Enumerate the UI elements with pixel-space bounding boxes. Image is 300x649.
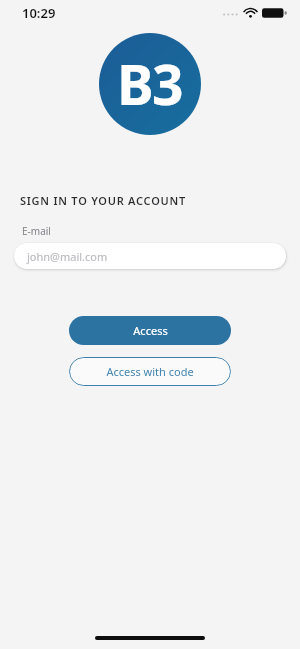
other: Cellular signal bbox=[223, 9, 240, 17]
staticText: john@mail.com bbox=[27, 249, 108, 264]
staticText: E-mail bbox=[22, 224, 51, 238]
button[interactable]: Access bbox=[69, 316, 231, 345]
button[interactable]: john@mail.com bbox=[14, 243, 286, 269]
staticText: 10:29 bbox=[22, 4, 56, 22]
other: Battery bbox=[262, 7, 287, 19]
button[interactable]: Access with code bbox=[69, 357, 231, 386]
staticText: Access bbox=[133, 323, 168, 338]
staticText: Access with code bbox=[106, 364, 194, 379]
other: Wi-Fi bbox=[244, 8, 257, 18]
staticText: B3 bbox=[117, 46, 183, 121]
staticText: SIGN IN TO YOUR ACCOUNT bbox=[20, 193, 186, 208]
